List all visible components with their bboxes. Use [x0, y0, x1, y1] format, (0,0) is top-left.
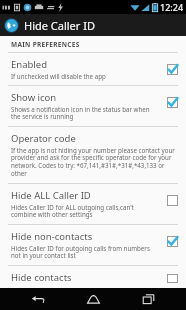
button[interactable]: Recent apps [131, 289, 165, 309]
button[interactable]: Hide non-contacts [0, 225, 186, 265]
button[interactable]: Home [76, 289, 110, 309]
button[interactable]: Hide contacts [0, 266, 186, 288]
button[interactable]: Hide non-contacts checkbox [164, 233, 180, 249]
staticText: If unchecked will disable the app [11, 72, 106, 80]
button[interactable]: Hide contacts checkbox [164, 274, 180, 283]
staticText: Hides Caller ID for outgoing calls from … [11, 244, 160, 260]
staticText: Show icon [11, 91, 57, 104]
staticText: Operator code [11, 132, 76, 145]
button[interactable]: Enabled [0, 53, 186, 85]
staticText: Hide contacts [11, 271, 72, 283]
button[interactable]: Hide ALL Caller ID checkbox [164, 192, 180, 208]
button[interactable]: Enabled checkbox [164, 61, 180, 77]
button[interactable]: Hide Caller ID app icon [4, 18, 19, 33]
button[interactable]: Back [21, 289, 55, 309]
staticText: Shows a notification icon in the status … [11, 105, 160, 121]
button[interactable]: Hide ALL Caller ID [0, 184, 186, 224]
staticText: Hide ALL Caller ID [11, 189, 91, 202]
staticText: If the app is not hiding your number ple… [11, 146, 180, 178]
button[interactable]: Operator code [0, 127, 186, 183]
staticText: 12:24 [160, 1, 184, 13]
staticText: Hide non-contacts [11, 230, 93, 243]
staticText: MAIN PREFERENCES [11, 40, 80, 49]
staticText: Enabled [11, 58, 47, 71]
button[interactable]: Show icon [0, 86, 186, 126]
staticText: Hide Caller ID [24, 18, 95, 33]
button[interactable]: Show icon checkbox [164, 94, 180, 110]
staticText: Hides Caller ID for ALL outgoing calls,c… [11, 203, 160, 219]
